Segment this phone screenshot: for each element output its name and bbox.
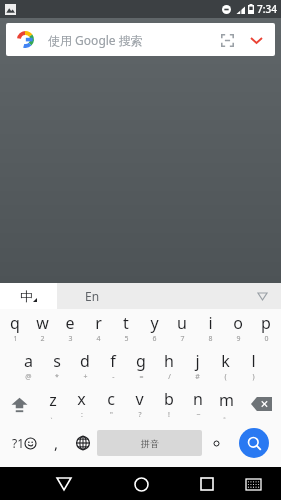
button[interactable]: c xyxy=(96,385,125,423)
staticText: 4 xyxy=(96,334,101,344)
button[interactable]: 拼音 xyxy=(97,430,202,456)
staticText: ( xyxy=(224,372,227,382)
button[interactable]: 使用 Google 搜索 xyxy=(6,23,275,56)
button[interactable]: Change keyboard language xyxy=(69,423,97,463)
staticText: ?1 xyxy=(12,435,25,451)
button[interactable]: d xyxy=(71,347,99,385)
button[interactable]: Recent apps xyxy=(193,470,221,498)
button[interactable]: k xyxy=(211,347,239,385)
other: Search xyxy=(230,426,277,460)
staticText: h xyxy=(164,350,174,372)
staticText: w xyxy=(36,312,49,334)
staticText: + xyxy=(83,372,88,382)
staticText: 6 xyxy=(152,334,157,344)
button[interactable]: g xyxy=(127,347,155,385)
staticText: 9 xyxy=(236,334,241,344)
staticText: o xyxy=(233,312,243,334)
staticText: u xyxy=(177,312,187,334)
staticText: # xyxy=(195,372,200,382)
button[interactable]: Home xyxy=(127,470,155,498)
staticText: 中 xyxy=(20,288,33,304)
staticText: j xyxy=(195,350,200,372)
staticText: d xyxy=(80,350,90,372)
staticText: - xyxy=(112,372,115,382)
button[interactable] xyxy=(239,428,269,458)
button[interactable]: Back xyxy=(50,470,78,498)
button[interactable]: Expand candidates xyxy=(253,287,271,305)
button[interactable]: v xyxy=(125,385,154,423)
staticText: x xyxy=(77,388,86,410)
button[interactable]: b xyxy=(154,385,183,423)
staticText: = xyxy=(139,372,144,382)
button[interactable]: s xyxy=(43,347,71,385)
staticText: 。 xyxy=(223,411,230,420)
staticText: 1 xyxy=(13,334,18,344)
button[interactable]: t xyxy=(112,309,140,347)
staticText: ~ xyxy=(196,410,201,420)
button[interactable]: z xyxy=(39,385,67,423)
staticText: z xyxy=(49,389,57,411)
staticText: ? xyxy=(138,410,142,420)
button[interactable]: a xyxy=(14,347,43,385)
staticText: v xyxy=(135,388,144,410)
button[interactable]: Shift xyxy=(0,385,39,423)
staticText: q xyxy=(10,312,20,334)
button[interactable]: n xyxy=(183,385,212,423)
button[interactable]: En xyxy=(57,283,281,309)
staticText: s xyxy=(53,350,61,372)
staticText: a xyxy=(24,350,33,372)
staticText: g xyxy=(136,350,146,372)
staticText: f xyxy=(110,350,116,372)
staticText: 、 xyxy=(50,411,57,420)
button[interactable]: , xyxy=(44,423,69,463)
button[interactable]: h xyxy=(155,347,183,385)
staticText: 2 xyxy=(40,334,45,344)
staticText: ! xyxy=(168,410,170,420)
staticText: r xyxy=(95,312,102,334)
staticText: b xyxy=(164,388,174,410)
button[interactable]: m xyxy=(212,385,241,423)
button[interactable]: w xyxy=(28,309,56,347)
staticText: En xyxy=(85,288,100,304)
button[interactable]: Backspace xyxy=(241,385,281,423)
staticText: l xyxy=(251,350,256,372)
staticText: 0 xyxy=(264,334,269,344)
button[interactable]: ?1 xyxy=(4,423,44,463)
button[interactable]: o xyxy=(224,309,252,347)
button[interactable]: j xyxy=(183,347,211,385)
button[interactable]: r xyxy=(84,309,112,347)
staticText: @ xyxy=(25,372,32,382)
button[interactable]: Switch keyboard xyxy=(241,472,265,496)
staticText: 使用 Google 搜索 xyxy=(48,32,143,48)
staticText: 7 xyxy=(180,334,185,344)
staticText: " xyxy=(110,410,113,420)
staticText: 7:34 xyxy=(257,2,277,16)
button[interactable]: u xyxy=(168,309,196,347)
button[interactable]: e xyxy=(56,309,84,347)
staticText: : xyxy=(81,410,83,420)
button[interactable]: Collapse xyxy=(245,29,267,51)
staticText: / xyxy=(168,372,171,382)
button[interactable]: p xyxy=(252,309,280,347)
button[interactable]: l xyxy=(239,347,267,385)
staticText: 5 xyxy=(124,334,129,344)
button[interactable]: 中 xyxy=(0,283,57,309)
staticText: c xyxy=(107,388,115,410)
button[interactable] xyxy=(202,423,230,463)
staticText: e xyxy=(65,312,75,334)
button[interactable]: y xyxy=(140,309,168,347)
button[interactable]: x xyxy=(67,385,96,423)
staticText: ) xyxy=(252,372,255,382)
staticText: * xyxy=(55,372,59,382)
staticText: n xyxy=(193,388,203,410)
staticText: 3 xyxy=(68,334,73,344)
staticText: , xyxy=(54,433,59,453)
button[interactable]: Google Lens xyxy=(215,28,239,52)
staticText: i xyxy=(208,312,213,334)
staticText: 拼音 xyxy=(141,438,159,449)
button[interactable]: q xyxy=(1,309,28,347)
button[interactable]: i xyxy=(196,309,224,347)
staticText: 8 xyxy=(208,334,213,344)
button[interactable]: f xyxy=(99,347,127,385)
staticText: y xyxy=(150,312,159,334)
